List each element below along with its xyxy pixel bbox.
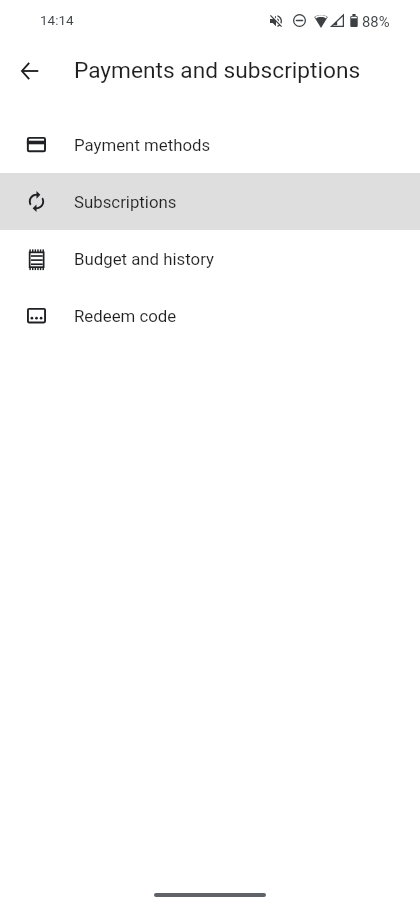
staticText: Payment methods [74,135,211,155]
button[interactable]: Subscriptions [0,173,420,230]
staticText: Payments and subscriptions [74,57,361,84]
button[interactable]: Redeem code [0,287,420,344]
button[interactable]: Payment methods [0,116,420,173]
staticText: Subscriptions [74,192,177,212]
staticText: Budget and history [74,249,214,269]
staticText: 88% [362,13,390,30]
button[interactable]: Budget and history [0,230,420,287]
button[interactable]: Back [6,47,54,95]
staticText: 14:14 [40,12,74,28]
staticText: Redeem code [74,306,177,326]
